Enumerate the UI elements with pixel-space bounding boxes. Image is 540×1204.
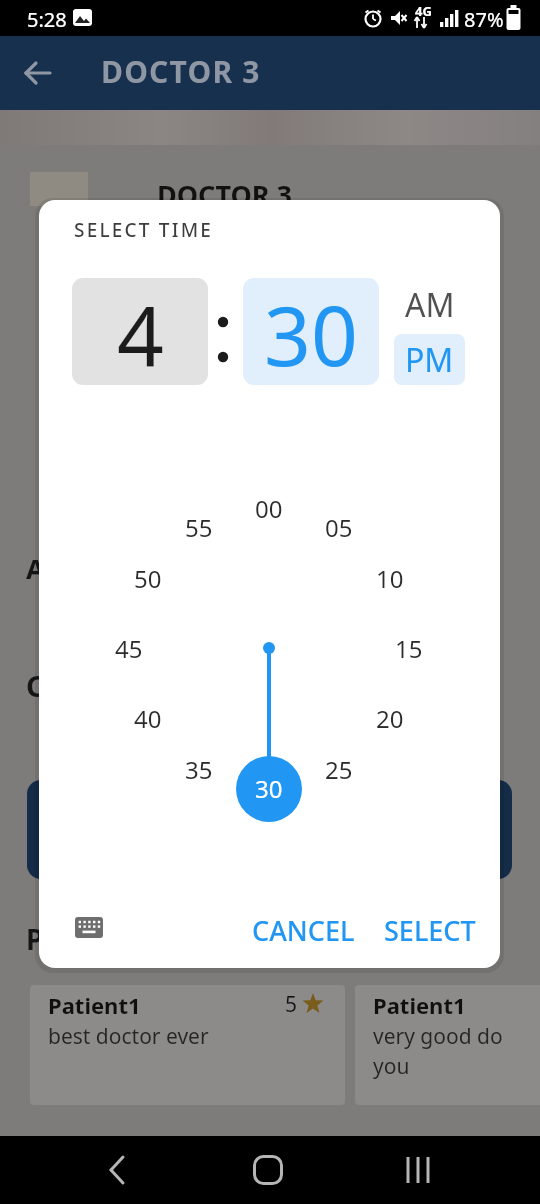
staticText: best doctor ever xyxy=(48,1022,209,1051)
staticText: 30 xyxy=(255,772,283,805)
staticText: 15 xyxy=(395,632,423,665)
button[interactable]: 15 xyxy=(385,631,433,665)
button[interactable]: 40 xyxy=(124,701,172,735)
staticText: 40 xyxy=(134,702,162,735)
button[interactable]: Patient1 xyxy=(355,985,540,1105)
staticText: 00 xyxy=(255,492,283,525)
button[interactable]: 30 xyxy=(243,278,379,385)
button[interactable] xyxy=(88,1140,148,1200)
button[interactable]: 30 xyxy=(245,771,293,805)
button[interactable]: 05 xyxy=(315,510,363,544)
staticText: Patient1 xyxy=(48,990,141,1020)
button[interactable]: 25 xyxy=(315,752,363,786)
staticText: 4 xyxy=(117,278,164,385)
button[interactable]: CANCEL xyxy=(240,906,367,954)
button[interactable] xyxy=(14,49,62,97)
staticText: Patient1 xyxy=(373,990,466,1020)
button[interactable]: PM xyxy=(394,334,465,385)
button[interactable]: 50 xyxy=(124,561,172,595)
button[interactable]: 00 xyxy=(245,491,293,525)
staticText: 05 xyxy=(325,511,353,544)
button[interactable] xyxy=(27,780,512,879)
staticText: 30 xyxy=(264,278,358,385)
button[interactable]: 20 xyxy=(366,701,414,735)
staticText: P xyxy=(26,920,44,958)
button[interactable] xyxy=(75,917,103,938)
button[interactable]: 10 xyxy=(366,561,414,595)
staticText: 5 xyxy=(285,990,298,1019)
button[interactable]: 4 xyxy=(72,278,208,385)
button[interactable] xyxy=(388,1140,448,1200)
staticText: PM xyxy=(405,338,454,382)
staticText: very good do xyxy=(373,1022,503,1051)
button[interactable] xyxy=(238,1140,298,1200)
staticText: 5:28 xyxy=(27,6,67,33)
staticText: CANCEL xyxy=(252,912,355,949)
staticText: 87% xyxy=(464,6,504,33)
staticText: 55 xyxy=(185,511,213,544)
staticText: you xyxy=(373,1052,410,1081)
staticText: 35 xyxy=(185,753,213,786)
staticText: C xyxy=(26,666,45,705)
staticText: SELECT xyxy=(384,912,476,949)
button[interactable]: 35 xyxy=(175,752,223,786)
staticText: 20 xyxy=(376,702,404,735)
staticText: 50 xyxy=(134,562,162,595)
staticText: DOCTOR 3 xyxy=(101,51,261,92)
staticText: 25 xyxy=(325,753,353,786)
button[interactable]: SELECT xyxy=(372,906,487,954)
button[interactable]: 45 xyxy=(105,631,153,665)
staticText: SELECT TIME xyxy=(74,217,214,243)
staticText: 45 xyxy=(115,632,143,665)
button[interactable]: Patient1 xyxy=(30,985,345,1105)
staticText: DOCTOR 3 xyxy=(157,176,293,213)
staticText: Ad xyxy=(26,550,62,587)
button[interactable]: 55 xyxy=(175,510,223,544)
staticText: 10 xyxy=(376,562,404,595)
staticText: 4G xyxy=(415,2,432,20)
button[interactable]: AM xyxy=(394,283,465,327)
staticText: AM xyxy=(405,283,455,327)
